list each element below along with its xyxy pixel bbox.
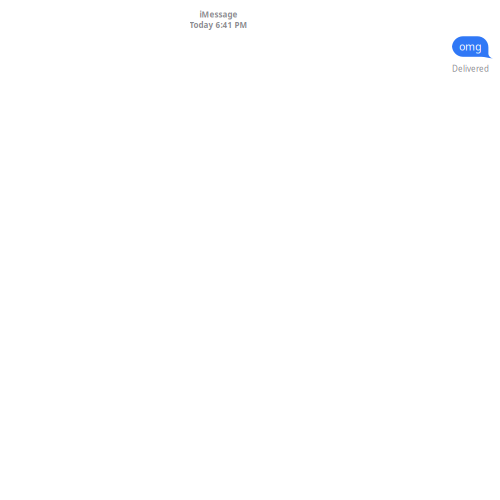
staticText: Today 6:41 PM [189,20,247,30]
staticText: omg [459,39,482,53]
staticText: iMessage [199,9,237,20]
staticText: Delivered [452,63,489,74]
button[interactable]: omg [452,36,493,58]
